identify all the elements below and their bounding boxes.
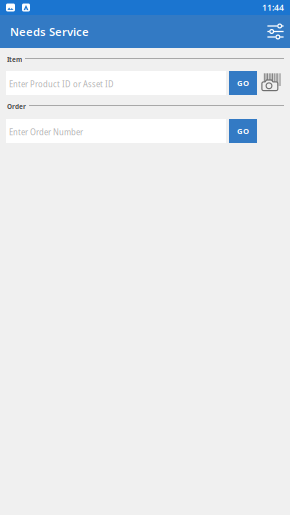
staticText: Item: [7, 55, 22, 64]
staticText: Order: [7, 102, 26, 111]
button[interactable]: Filter: [264, 15, 287, 48]
button[interactable]: GO: [229, 119, 257, 143]
staticText: GO: [237, 78, 249, 88]
staticText: Enter Order Number: [9, 126, 83, 138]
staticText: Enter Product ID or Asset ID: [9, 78, 114, 90]
staticText: Needs Service: [10, 24, 89, 39]
staticText: 11:44: [262, 2, 284, 13]
button[interactable]: GO: [229, 71, 257, 95]
staticText: GO: [237, 126, 249, 136]
button[interactable]: Scan barcode: [258, 71, 286, 95]
